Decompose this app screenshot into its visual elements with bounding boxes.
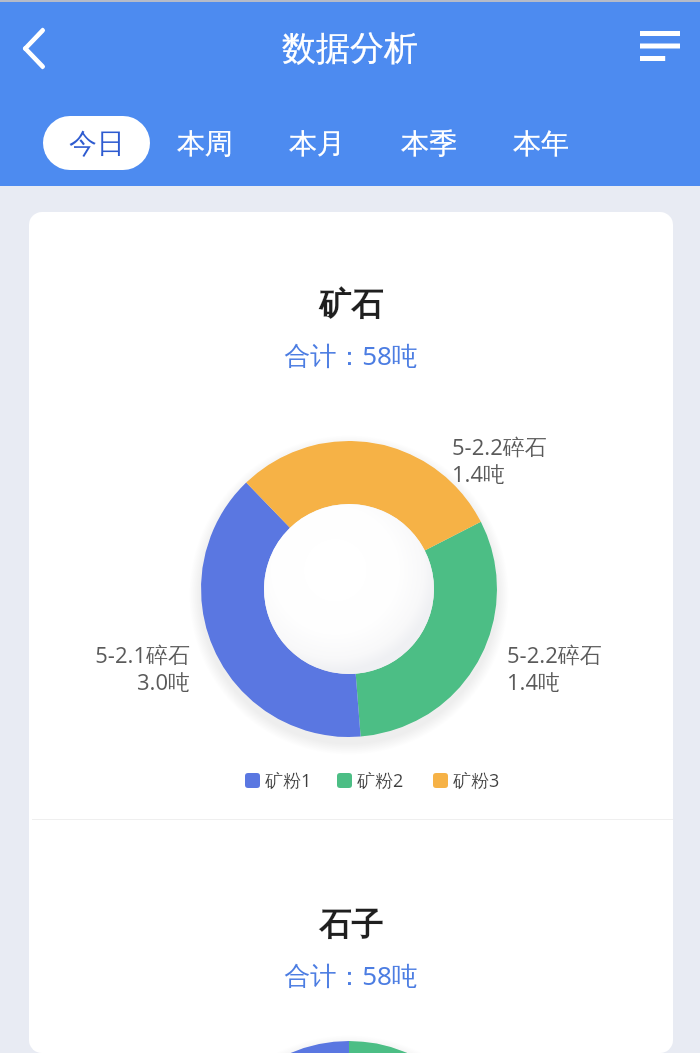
button[interactable]: 本周 <box>166 116 244 170</box>
staticText: 5-2.2碎石 1.4吨 <box>507 639 602 697</box>
button[interactable]: 本年 <box>502 116 580 170</box>
button[interactable]: Menu <box>632 18 687 74</box>
staticText: 本月 <box>289 126 345 161</box>
staticText: 5-2.1碎石 3.0吨 <box>66 639 190 697</box>
staticText: 本周 <box>177 126 233 161</box>
staticText: 本年 <box>513 126 569 161</box>
staticText: 5-2.2碎石 1.4吨 <box>452 431 547 489</box>
button[interactable]: 矿粉1 <box>245 768 312 793</box>
staticText: 矿粉3 <box>453 768 500 793</box>
staticText: 今日 <box>69 126 125 161</box>
button[interactable]: 本月 <box>278 116 356 170</box>
button[interactable]: 本季 <box>390 116 468 170</box>
staticText: 合计：58吨 <box>29 337 673 373</box>
staticText: 矿石 <box>29 284 673 324</box>
staticText: 矿粉1 <box>265 768 312 793</box>
staticText: 石子 <box>29 904 673 944</box>
button[interactable]: 矿粉2 <box>337 768 404 793</box>
button[interactable]: 今日 <box>43 116 150 170</box>
staticText: 矿粉2 <box>357 768 404 793</box>
button[interactable]: 矿粉3 <box>433 768 500 793</box>
staticText: 本季 <box>401 126 457 161</box>
button[interactable]: Back <box>6 20 62 76</box>
staticText: 合计：58吨 <box>29 957 673 993</box>
staticText: 数据分析 <box>0 27 700 70</box>
